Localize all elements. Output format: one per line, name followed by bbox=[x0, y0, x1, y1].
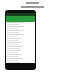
button[interactable] bbox=[6, 28, 35, 30]
button[interactable] bbox=[6, 22, 35, 24]
button[interactable] bbox=[6, 42, 35, 44]
button[interactable] bbox=[6, 32, 35, 34]
button[interactable] bbox=[6, 52, 35, 54]
button[interactable] bbox=[6, 48, 35, 50]
button[interactable] bbox=[6, 24, 35, 26]
button[interactable] bbox=[6, 56, 35, 58]
button[interactable] bbox=[6, 30, 35, 32]
button[interactable] bbox=[6, 40, 35, 42]
button[interactable] bbox=[6, 44, 35, 46]
button[interactable] bbox=[6, 34, 35, 36]
button[interactable] bbox=[6, 46, 35, 48]
button[interactable] bbox=[6, 36, 35, 38]
button[interactable] bbox=[6, 38, 35, 40]
button[interactable] bbox=[6, 26, 35, 28]
button[interactable] bbox=[6, 58, 35, 60]
button[interactable] bbox=[6, 54, 35, 56]
button[interactable] bbox=[6, 50, 35, 52]
button[interactable] bbox=[6, 60, 35, 62]
button[interactable] bbox=[6, 62, 35, 63]
